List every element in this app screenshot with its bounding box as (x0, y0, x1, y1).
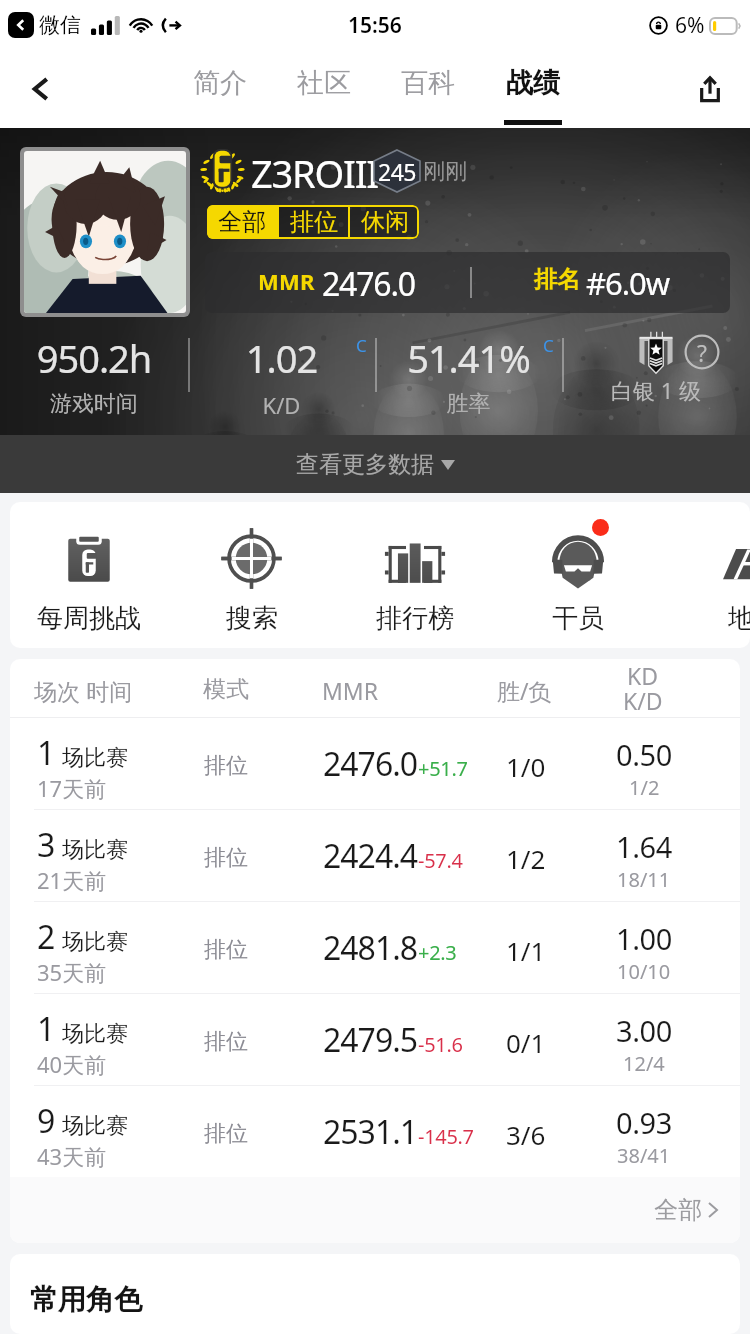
button[interactable]: 社区 (294, 50, 354, 128)
button[interactable]: 全部 (207, 205, 277, 239)
staticText: 21天前 (37, 865, 107, 895)
button[interactable]: 干员 (523, 502, 633, 648)
staticText: 1/1 (506, 933, 546, 968)
button[interactable]: 简介 (190, 50, 250, 128)
staticText: 胜率 (375, 390, 562, 418)
button[interactable]: 百科 (398, 50, 458, 128)
staticText: K/D (188, 390, 375, 420)
staticText: 微信 (39, 12, 81, 38)
button[interactable]: Avatar (24, 151, 186, 313)
staticText: 15:56 (348, 11, 402, 40)
button[interactable]: 休闲 (350, 205, 419, 239)
staticText: 干员 (523, 602, 633, 635)
staticText: 1/0 (506, 749, 546, 784)
staticText: 排位 (204, 1120, 248, 1148)
staticText: 查看更多数据 (296, 450, 434, 479)
staticText: MMR (258, 266, 315, 296)
staticText: 1.02 (188, 332, 375, 384)
staticText: 白银 1 级 (562, 375, 750, 405)
staticText: 3 (37, 823, 56, 867)
staticText: -57.4 (418, 847, 463, 874)
staticText: 社区 (294, 66, 354, 100)
staticText: 1 (37, 731, 56, 775)
staticText: 51.41% (375, 332, 562, 384)
button[interactable]: Back (14, 62, 68, 116)
button[interactable]: 排位 (279, 205, 348, 239)
staticText: 1/2 (506, 841, 546, 876)
staticText: 1.00 (616, 919, 672, 958)
staticText: C (543, 334, 554, 357)
staticText: Z3ROIII (251, 147, 379, 199)
button[interactable]: 排行榜 (360, 502, 470, 648)
staticText: C (356, 334, 367, 357)
button[interactable]: Rank info (684, 334, 720, 370)
staticText: 排位 (204, 752, 248, 780)
staticText: 场比赛 (62, 1020, 128, 1048)
staticText: K/D (623, 685, 663, 716)
button[interactable]: 战绩 (503, 50, 563, 128)
button[interactable]: 搜索 (197, 502, 307, 648)
button[interactable]: 1 (10, 994, 740, 1085)
button[interactable]: 3 (10, 810, 740, 901)
staticText: 百科 (398, 66, 458, 100)
staticText: 排位 (204, 936, 248, 964)
staticText: 排位 (204, 1028, 248, 1056)
staticText: 0/1 (506, 1025, 546, 1060)
button[interactable]: 9 (10, 1086, 740, 1177)
staticText: 2481.8 (323, 926, 418, 970)
staticText: 全部 (218, 207, 266, 237)
staticText: 18/11 (617, 866, 671, 893)
staticText: 10/10 (617, 958, 671, 985)
button[interactable]: 查看更多数据 (0, 435, 750, 493)
staticText: 1/2 (629, 774, 660, 801)
staticText: 40天前 (37, 1049, 107, 1079)
staticText: 刚刚 (423, 158, 467, 186)
staticText: 0.50 (616, 735, 672, 774)
staticText: 排行榜 (360, 602, 470, 635)
staticText: 0.93 (616, 1103, 672, 1142)
button[interactable]: 2 (10, 902, 740, 993)
staticText: 3.00 (616, 1011, 672, 1050)
staticText: +2.3 (418, 939, 457, 966)
staticText: 搜索 (197, 602, 307, 635)
button[interactable]: 1 (10, 718, 740, 809)
staticText: ? (697, 337, 707, 368)
staticText: 1 (37, 1007, 56, 1051)
staticText: 2476.0 (323, 742, 418, 786)
staticText: 胜/负 (497, 675, 552, 706)
staticText: 950.2h (0, 332, 188, 384)
staticText: 2531.1 (323, 1110, 418, 1154)
staticText: 排名 (534, 265, 580, 294)
staticText: KD (627, 660, 659, 691)
staticText: 排位 (204, 844, 248, 872)
staticText: 全部 (654, 1195, 702, 1225)
button[interactable]: 每周挑战 (34, 502, 144, 648)
staticText: 场比赛 (62, 928, 128, 956)
staticText: 场比赛 (62, 836, 128, 864)
staticText: 3/6 (506, 1117, 546, 1152)
staticText: 简介 (190, 66, 250, 100)
button[interactable]: 地 (686, 502, 750, 648)
staticText: 1.64 (616, 827, 672, 866)
staticText: 2479.5 (323, 1018, 418, 1062)
staticText: 43天前 (37, 1141, 107, 1171)
staticText: 游戏时间 (0, 390, 188, 418)
staticText: 战绩 (503, 66, 563, 100)
button[interactable]: 全部 (654, 1195, 718, 1225)
staticText: 2476.0 (322, 262, 415, 306)
staticText: 2424.4 (323, 834, 418, 878)
staticText: 常用角色 (30, 1282, 142, 1317)
staticText: 2 (37, 915, 56, 959)
staticText: 地 (686, 602, 750, 635)
staticText: +51.7 (418, 755, 468, 782)
staticText: 休闲 (361, 207, 409, 237)
staticText: 场比赛 (62, 1112, 128, 1140)
staticText: MMR (322, 675, 379, 706)
staticText: 35天前 (37, 957, 107, 987)
staticText: 每周挑战 (34, 602, 144, 635)
staticText: #6.0w (586, 262, 670, 304)
staticText: 17天前 (37, 773, 107, 803)
staticText: 场比赛 (62, 744, 128, 772)
staticText: -51.6 (418, 1031, 463, 1058)
button[interactable]: Share (684, 63, 736, 115)
